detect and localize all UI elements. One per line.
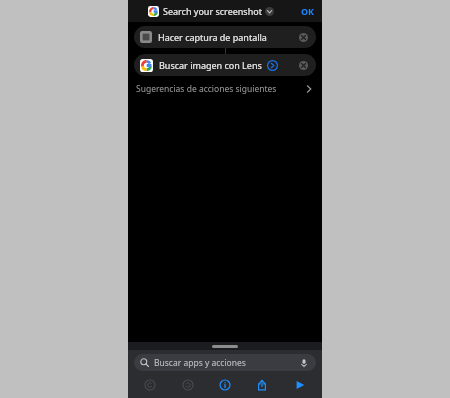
button[interactable]: Hacer captura de pantalla (134, 26, 316, 48)
button[interactable]: Search your screenshot (146, 4, 276, 18)
button[interactable]: Descartar sugerencia (296, 30, 310, 44)
button[interactable]: Búsqueda por voz (298, 357, 310, 369)
staticText: Search your screenshot (163, 5, 262, 17)
button[interactable]: Reproducir (285, 377, 315, 393)
staticText: Hacer captura de pantalla (158, 31, 267, 43)
button[interactable]: Compartir (247, 377, 277, 393)
button[interactable]: Sugerencias de acciones siguientes (128, 76, 322, 102)
staticText: Buscar apps y acciones (154, 357, 246, 369)
button[interactable]: Información (210, 377, 240, 393)
staticText: Sugerencias de acciones siguientes (136, 83, 277, 95)
button[interactable]: Rehacer (173, 377, 203, 393)
staticText: Buscar imagen con Lens (159, 59, 262, 71)
button[interactable]: Buscar apps y acciones (134, 354, 316, 371)
button[interactable]: OK (294, 2, 322, 20)
staticText: OK (301, 5, 315, 17)
button[interactable]: Descartar sugerencia (296, 58, 310, 72)
button[interactable]: Deshacer (135, 377, 165, 393)
button[interactable]: Buscar imagen con Lens (134, 54, 316, 76)
